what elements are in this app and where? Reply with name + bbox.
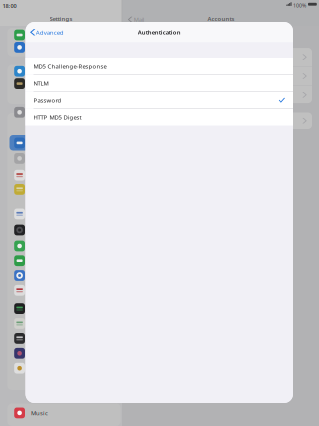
staticText: NTLM — [33, 79, 48, 87]
button[interactable]: NTLM — [25, 75, 293, 91]
staticText: Mail — [134, 16, 144, 23]
staticText: Settings — [49, 15, 72, 23]
staticText: Authentication — [138, 28, 181, 36]
button[interactable]: Mail — [124, 13, 148, 26]
staticText: Password — [33, 96, 61, 104]
staticText: Accounts — [207, 15, 234, 23]
staticText: 100% — [293, 2, 306, 9]
button[interactable]: Advanced — [25, 22, 70, 42]
staticText: MD5 Challenge-Response — [33, 62, 106, 70]
staticText: Music — [31, 409, 48, 417]
button[interactable]: HTTP MD5 Digest — [25, 109, 293, 125]
staticText: Advanced — [36, 28, 64, 36]
button[interactable]: MD5 Challenge-Response — [25, 58, 293, 74]
staticText: 18:00 — [2, 2, 16, 9]
button[interactable]: Music — [9, 405, 118, 420]
staticText: HTTP MD5 Digest — [33, 113, 81, 121]
button[interactable]: Password — [25, 92, 293, 108]
